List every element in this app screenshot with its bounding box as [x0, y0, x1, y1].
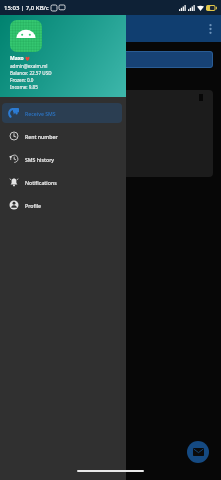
staticText: Frozen: 0.0	[10, 77, 34, 83]
button[interactable]: Search	[8, 51, 213, 68]
staticText: SMS history	[25, 156, 55, 163]
button[interactable]: Rent number	[2, 126, 122, 146]
button[interactable]: Receive SMS	[2, 103, 122, 123]
button[interactable]: New message	[187, 441, 209, 463]
staticText: Profile	[25, 202, 42, 209]
staticText: Income: 9.85	[10, 84, 38, 90]
staticText: Rent number	[25, 133, 58, 140]
staticText: Maxo	[10, 55, 25, 62]
staticText: Notifications	[25, 179, 57, 186]
button[interactable]: Notifications	[2, 172, 122, 192]
staticText: Search	[13, 56, 32, 64]
button[interactable]: More options	[199, 18, 221, 40]
staticText: Balance: 22.57 USD	[10, 70, 52, 76]
staticText: 15:03 | 7,0 KB/c	[4, 4, 49, 12]
staticText: Receive SMS	[25, 110, 56, 117]
staticText: admin@exaim.ml	[10, 63, 48, 69]
button[interactable]: Profile	[2, 195, 122, 215]
button[interactable]: SMS history	[2, 149, 122, 169]
button[interactable]: Delete	[8, 90, 213, 177]
button[interactable]: Delete	[195, 92, 206, 103]
